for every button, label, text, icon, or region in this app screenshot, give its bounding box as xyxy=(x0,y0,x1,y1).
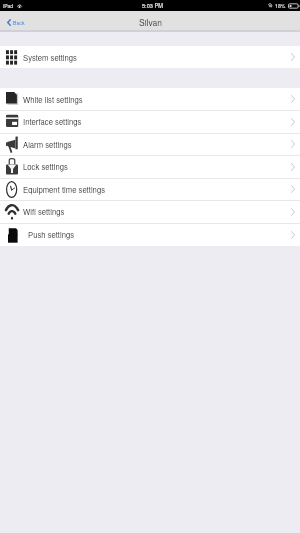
staticText: Equipment time settings xyxy=(23,184,105,195)
staticText: Silvan xyxy=(139,16,162,28)
button[interactable]: Back xyxy=(6,15,26,28)
staticText: Interface settings xyxy=(23,116,82,127)
button[interactable]: Interface settings xyxy=(0,110,300,133)
staticText: Alarm settings xyxy=(23,139,72,150)
staticText: Back xyxy=(13,19,25,26)
staticText: System settings xyxy=(23,52,77,63)
staticText: Wifi settings xyxy=(23,206,65,217)
staticText: Push settings xyxy=(28,229,75,240)
staticText: Lock settings xyxy=(23,161,68,172)
button[interactable]: System settings xyxy=(0,46,300,68)
staticText: 5:03 PM xyxy=(142,2,163,10)
button[interactable]: White list settings xyxy=(0,88,300,110)
button[interactable]: Equipment time settings xyxy=(0,178,300,200)
staticText: iPad xyxy=(3,2,14,9)
staticText: White list settings xyxy=(23,94,83,105)
button[interactable]: Wifi settings xyxy=(0,200,300,223)
staticText: 18% xyxy=(275,2,286,9)
button[interactable]: Push settings xyxy=(0,223,300,246)
button[interactable]: Alarm settings xyxy=(0,133,300,155)
button[interactable]: Lock settings xyxy=(0,155,300,178)
